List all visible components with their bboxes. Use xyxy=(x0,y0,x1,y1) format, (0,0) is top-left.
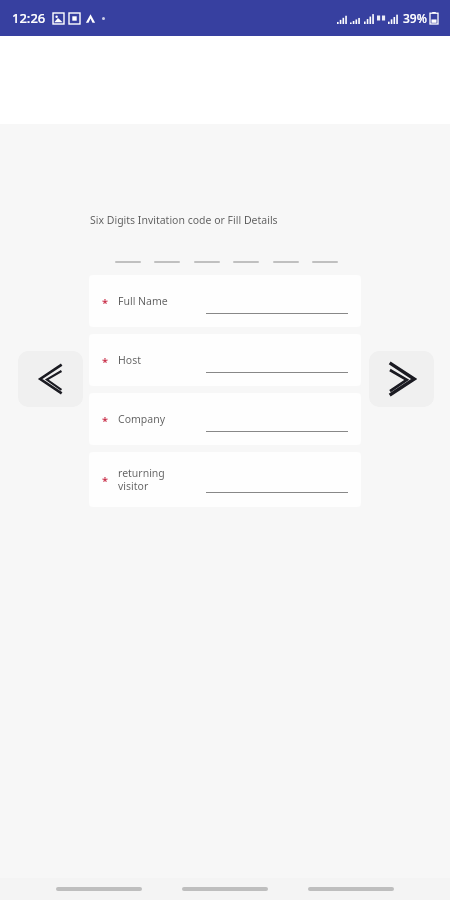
button[interactable] xyxy=(273,261,299,263)
staticText: returning visitor xyxy=(118,466,190,493)
button[interactable] xyxy=(194,261,220,263)
button[interactable]: * xyxy=(89,275,361,327)
button[interactable]: * xyxy=(89,334,361,386)
staticText: * xyxy=(102,354,108,369)
button[interactable]: Next xyxy=(369,351,434,407)
button[interactable]: * xyxy=(89,393,361,445)
button[interactable] xyxy=(312,261,338,263)
staticText: Full Name xyxy=(118,294,190,308)
button[interactable]: Previous xyxy=(18,351,83,407)
button[interactable] xyxy=(56,887,142,891)
button[interactable] xyxy=(154,261,180,263)
button[interactable] xyxy=(115,261,141,263)
staticText: Host xyxy=(118,353,190,367)
staticText: * xyxy=(102,413,108,428)
staticText: * xyxy=(102,473,108,488)
staticText: Six Digits Invitation code or Fill Detai… xyxy=(90,213,450,227)
staticText: 12:26 xyxy=(12,9,46,27)
button[interactable] xyxy=(233,261,259,263)
staticText: Company xyxy=(118,412,190,426)
staticText: 39% xyxy=(403,10,427,26)
button[interactable] xyxy=(182,887,268,891)
button[interactable] xyxy=(308,887,394,891)
button[interactable]: * xyxy=(89,452,361,507)
staticText: * xyxy=(102,295,108,310)
